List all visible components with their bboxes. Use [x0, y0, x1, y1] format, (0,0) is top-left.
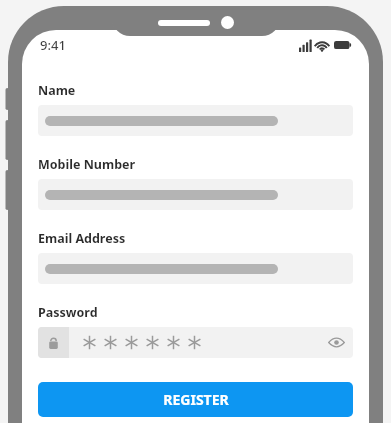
staticText: 9:41: [40, 36, 66, 54]
button[interactable]: [38, 253, 353, 284]
button[interactable]: Show password: [38, 327, 353, 358]
staticText: Password: [38, 304, 98, 321]
button[interactable]: Show password: [319, 327, 353, 358]
staticText: Email Address: [38, 230, 126, 247]
button[interactable]: [38, 179, 353, 210]
staticText: Name: [38, 82, 76, 99]
staticText: REGISTER: [163, 390, 229, 409]
staticText: Mobile Number: [38, 156, 136, 173]
button[interactable]: [38, 105, 353, 136]
button[interactable]: REGISTER: [38, 382, 353, 417]
